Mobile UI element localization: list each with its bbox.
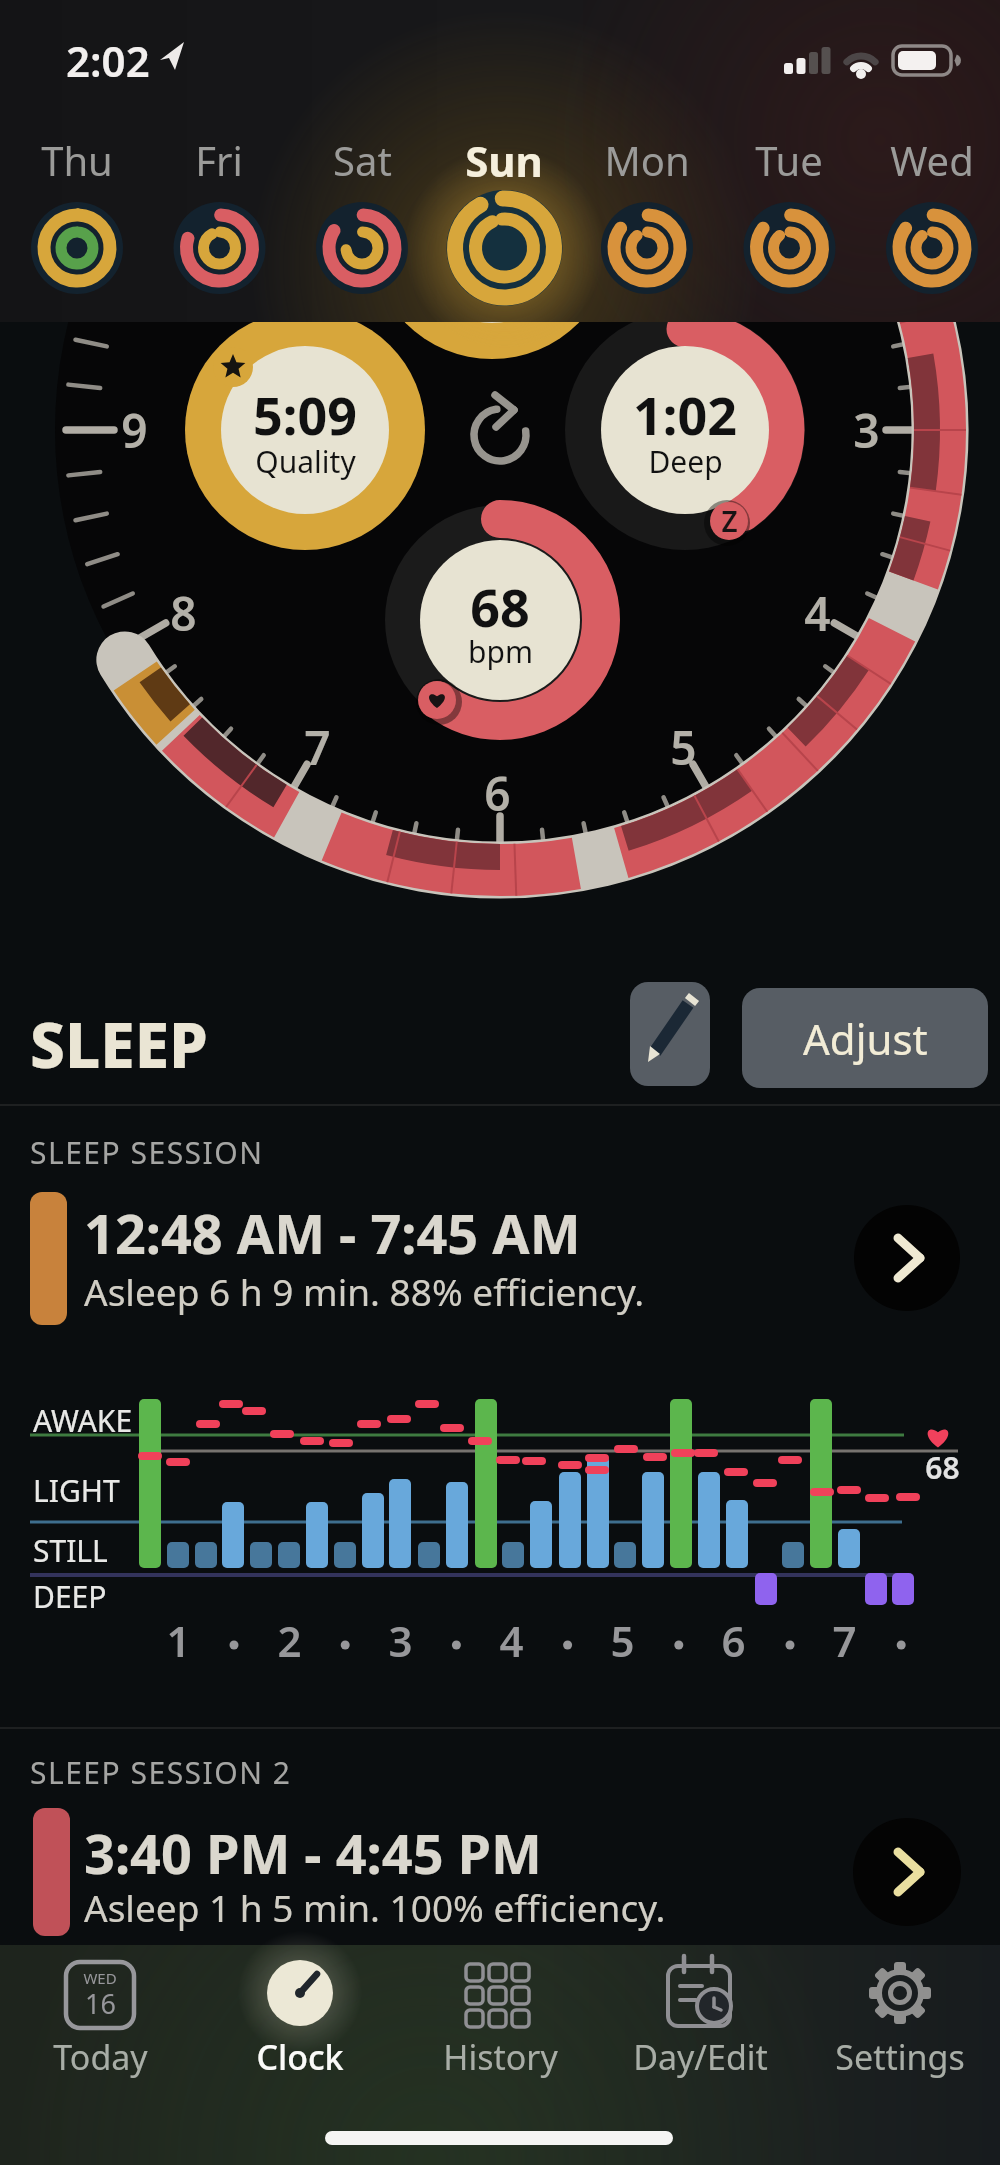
staticText: Thu — [41, 133, 113, 187]
button[interactable] — [20, 1180, 980, 1340]
staticText: Asleep 1 h 5 min. 100% efficiency. — [84, 1882, 666, 1932]
staticText: 68 — [925, 1447, 960, 1488]
staticText: 9 — [121, 399, 148, 462]
button[interactable]: Adjust — [742, 988, 988, 1088]
staticText: Tue — [755, 133, 823, 187]
staticText: STILL — [33, 1530, 108, 1571]
staticText: Day/Edit — [633, 2034, 768, 2080]
button[interactable] — [433, 115, 575, 315]
staticText: 4 — [804, 582, 831, 645]
staticText: 3 — [388, 1612, 413, 1669]
staticText: 12:48 AM - 7:45 AM — [84, 1196, 581, 1270]
staticText: Sat — [333, 133, 392, 187]
staticText: AWAKE — [33, 1400, 133, 1441]
button[interactable] — [20, 1800, 980, 1950]
button[interactable] — [630, 982, 710, 1086]
staticText: 2:02 — [66, 32, 150, 89]
staticText: History — [443, 2034, 558, 2080]
staticText: Clock — [256, 2034, 344, 2080]
staticText: 3:40 PM - 4:45 PM — [84, 1816, 543, 1890]
staticText: SLEEP — [30, 1002, 208, 1086]
staticText: Asleep 6 h 9 min. 88% efficiency. — [84, 1266, 645, 1316]
staticText: Fri — [195, 133, 243, 187]
staticText: 5 — [670, 716, 697, 779]
button[interactable] — [210, 1950, 390, 2085]
staticText: 8 — [170, 582, 197, 645]
staticText: 4 — [499, 1612, 524, 1669]
staticText: 1:02 — [633, 379, 737, 450]
staticText: Sun — [465, 132, 543, 189]
button[interactable] — [861, 115, 1000, 315]
button[interactable] — [6, 115, 148, 315]
staticText: 5 — [610, 1612, 635, 1669]
staticText: Settings — [835, 2034, 965, 2080]
staticText: SLEEP SESSION 2 — [30, 1752, 292, 1793]
staticText: WED — [83, 1968, 117, 1988]
button[interactable] — [610, 1950, 790, 2085]
button[interactable] — [291, 115, 433, 315]
staticText: 16 — [85, 1985, 116, 2022]
button[interactable] — [576, 115, 718, 315]
staticText: SLEEP SESSION — [30, 1132, 264, 1173]
staticText: 1 — [166, 1612, 191, 1669]
staticText: Quality — [255, 441, 356, 482]
staticText: Today — [53, 2034, 148, 2080]
staticText: Mon — [604, 133, 690, 187]
staticText: 68 — [470, 571, 530, 642]
button[interactable] — [718, 115, 860, 315]
staticText: 6 — [484, 762, 511, 825]
staticText: DEEP — [33, 1576, 107, 1617]
staticText: 6 — [721, 1612, 746, 1669]
staticText: Wed — [890, 133, 974, 187]
staticText: 2 — [277, 1612, 302, 1669]
staticText: 3 — [853, 399, 880, 462]
button[interactable] — [10, 1950, 190, 2085]
staticText: 7 — [832, 1612, 857, 1669]
staticText: 5:09 — [253, 379, 357, 450]
staticText: Adjust — [803, 1010, 928, 1067]
staticText: Deep — [648, 441, 723, 482]
button[interactable] — [810, 1950, 990, 2085]
staticText: LIGHT — [33, 1470, 120, 1511]
staticText: Z — [721, 502, 738, 540]
staticText: 7 — [304, 716, 331, 779]
button[interactable] — [148, 115, 290, 315]
button[interactable] — [410, 1950, 590, 2085]
staticText: bpm — [468, 631, 533, 672]
